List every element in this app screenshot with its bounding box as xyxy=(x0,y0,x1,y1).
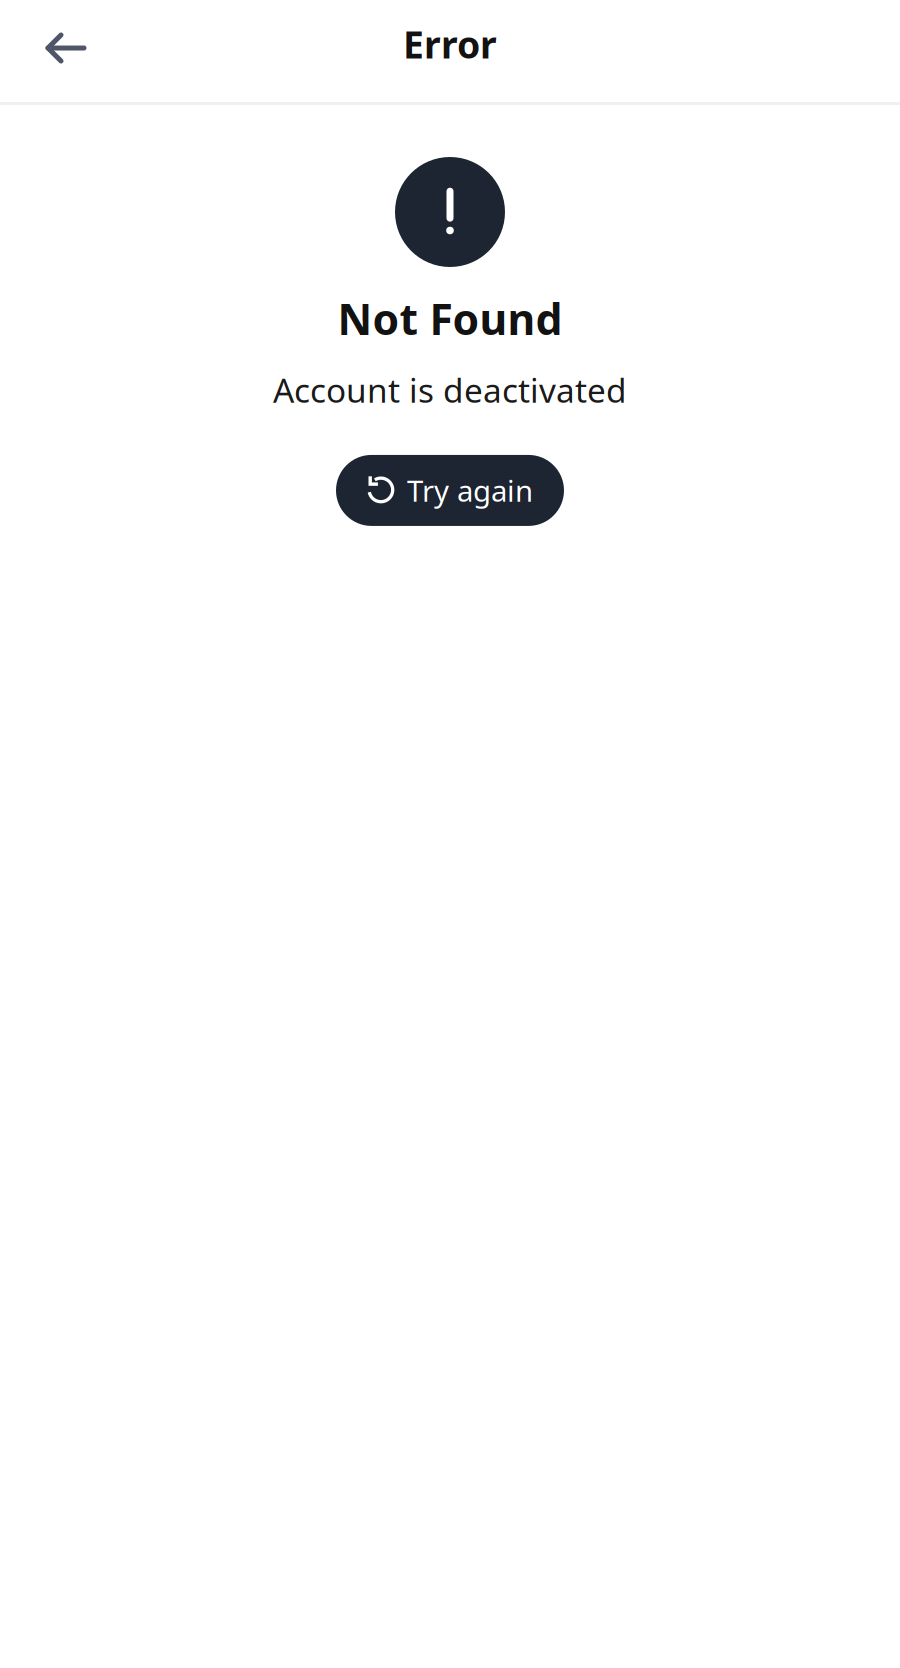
button[interactable]: Back xyxy=(0,11,110,85)
staticText: Not Found xyxy=(337,290,562,347)
button[interactable]: Try again xyxy=(336,455,564,526)
staticText: Error xyxy=(403,19,497,69)
staticText: Try again xyxy=(407,471,533,510)
staticText: Account is deactivated xyxy=(273,368,627,412)
